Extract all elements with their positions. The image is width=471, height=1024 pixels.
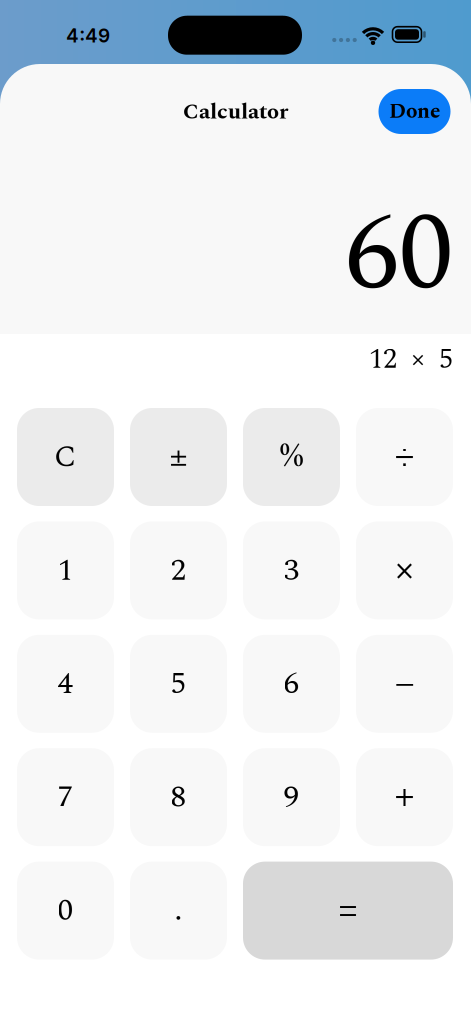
button[interactable]: Done [378,89,450,134]
staticText: 8 [170,774,186,821]
button[interactable]: 4 [17,635,114,733]
button[interactable]: 9 [243,748,340,846]
button[interactable]: 7 [17,748,114,846]
staticText: 0 [57,887,73,934]
button[interactable]: . [130,862,227,960]
staticText: C [54,433,77,481]
staticText: 60 [345,173,453,337]
staticText: 12 × 5 [369,338,453,381]
staticText: Done [389,95,440,127]
staticText: Calculator [183,95,288,129]
button[interactable]: % [243,408,340,506]
button[interactable]: ÷ [356,408,453,506]
staticText: − [394,653,414,714]
button[interactable]: ± [130,408,227,506]
staticText: 4 [57,660,73,707]
staticText: + [394,767,414,828]
staticText: 9 [283,774,299,821]
button[interactable]: 5 [130,635,227,733]
staticText: . [174,887,182,934]
button[interactable]: C [17,408,114,506]
staticText: 6 [283,660,299,707]
staticText: 1 [57,547,73,594]
button[interactable]: + [356,748,453,846]
button[interactable]: 8 [130,748,227,846]
button[interactable]: = [243,862,453,960]
staticText: × [394,540,414,601]
button[interactable]: × [356,521,453,619]
staticText: = [338,882,357,939]
staticText: 5 [170,660,186,707]
staticText: % [280,433,303,481]
button[interactable]: 6 [243,635,340,733]
button[interactable]: 1 [17,521,114,619]
staticText: 7 [57,774,73,821]
staticText: ÷ [394,427,414,487]
button[interactable]: − [356,635,453,733]
button[interactable]: 3 [243,521,340,619]
button[interactable]: 0 [17,862,114,960]
button[interactable]: 2 [130,521,227,619]
staticText: 4:49 [66,24,110,47]
staticText: 3 [283,547,299,594]
staticText: 2 [170,547,186,594]
staticText: ± [169,430,187,484]
